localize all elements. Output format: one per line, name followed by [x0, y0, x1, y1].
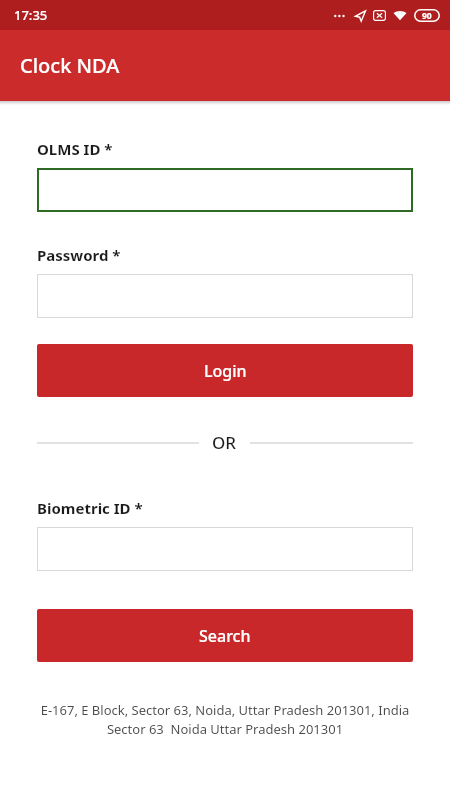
button[interactable]	[37, 168, 413, 212]
staticText: E-167, E Block, Sector 63, Noida, Uttar …	[37, 701, 413, 738]
button[interactable]: Login	[37, 344, 413, 397]
staticText: Clock NDA	[20, 52, 120, 79]
button[interactable]: Search	[37, 609, 413, 662]
staticText: Biometric ID *	[37, 498, 143, 518]
button[interactable]	[37, 527, 413, 571]
button[interactable]	[37, 274, 413, 318]
staticText: OLMS ID *	[37, 139, 113, 159]
staticText: OR	[212, 431, 237, 454]
staticText: 90	[422, 10, 432, 22]
staticText: Password *	[37, 245, 121, 265]
staticText: 17:35	[14, 6, 48, 24]
staticText: Login	[204, 360, 247, 382]
staticText: Search	[199, 625, 251, 647]
